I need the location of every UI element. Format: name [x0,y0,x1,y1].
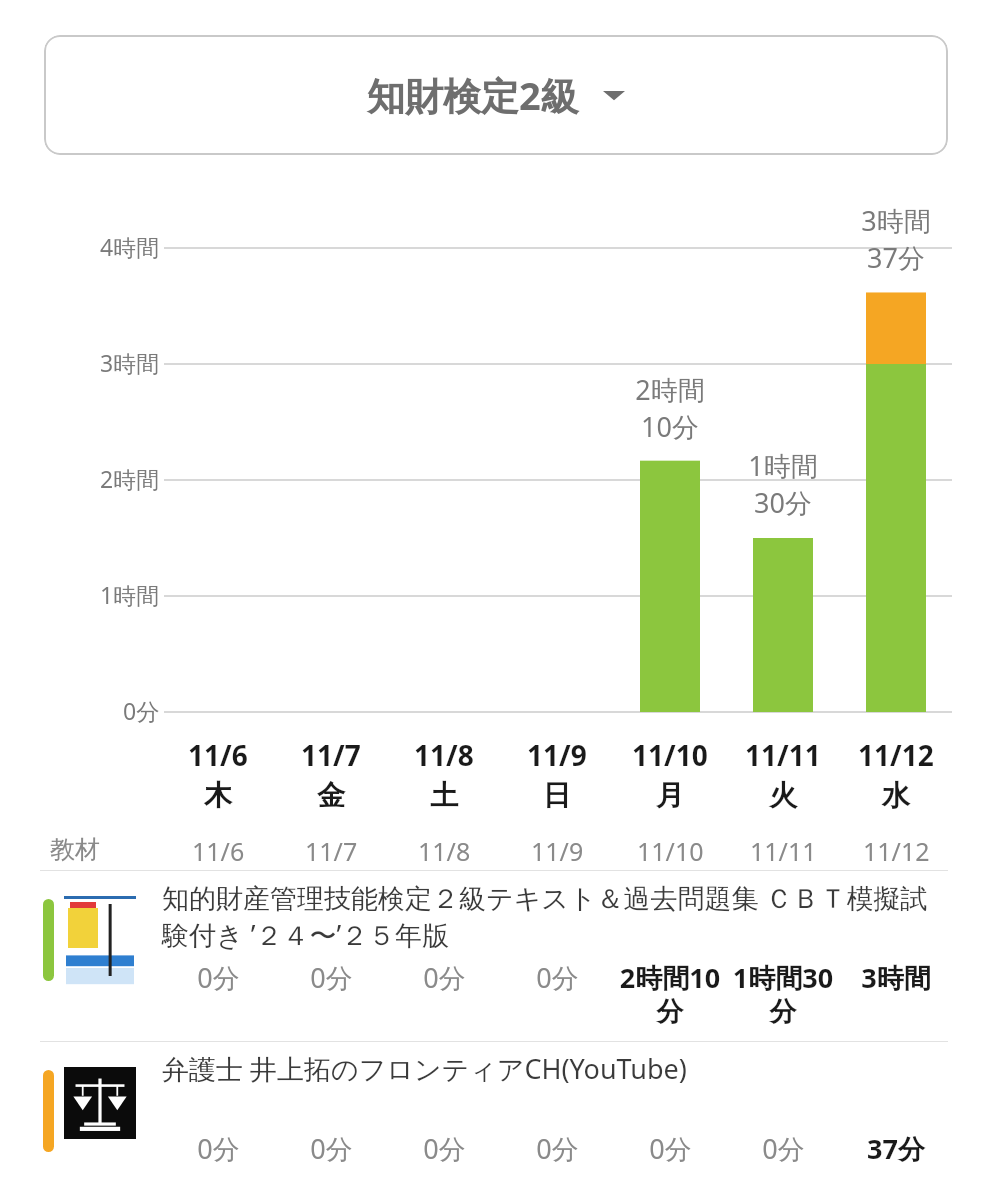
staticText: 0分 [536,959,579,996]
staticText: 月 [656,778,684,813]
staticText: 2時間10分 [614,959,726,1029]
staticText: 11/7 [301,736,361,774]
staticText: 0分 [762,1130,805,1167]
staticText: 11/8 [414,736,474,774]
staticText: 知財検定2級 [367,69,579,121]
staticText: 11/7 [305,834,358,868]
staticText: 0分 [423,959,466,996]
staticText: 4時間 [100,231,160,262]
staticText: 10分 [641,408,699,445]
button[interactable]: 弁護士 井上拓のフロンティアCH(YouTube) [0,1042,992,1200]
staticText: 水 [882,778,910,813]
staticText: 2時間 [100,463,160,494]
staticText: 1時間 [748,447,818,484]
staticText: 37分 [867,1130,925,1167]
staticText: 弁護士 井上拓のフロンティアCH(YouTube) [162,1050,687,1087]
staticText: 0分 [310,1130,353,1167]
staticText: 火 [769,778,797,813]
staticText: 11/11 [750,834,817,868]
staticText: 11/9 [527,736,587,774]
staticText: 0分 [197,1130,240,1167]
staticText: 2時間 [635,371,705,408]
staticText: 0分 [310,959,353,996]
button[interactable]: 知財検定2級 [44,35,948,155]
staticText: 3時間 [861,959,931,996]
staticText: 11/12 [858,736,934,774]
staticText: 0分 [197,959,240,996]
staticText: 金 [317,778,345,813]
staticText: 11/10 [632,736,708,774]
staticText: 0分 [536,1130,579,1167]
staticText: 11/6 [192,834,245,868]
staticText: 1時間 [100,579,160,610]
staticText: 11/9 [531,834,584,868]
staticText: 1時間30分 [727,959,839,1029]
staticText: 教材 [50,834,100,865]
button[interactable]: 知的財産管理技能検定２級テキスト＆過去問題集 ＣＢＴ模擬試験付き ’２４〜’２５… [0,871,992,1041]
staticText: 日 [543,778,571,813]
staticText: 11/8 [418,834,471,868]
staticText: 30分 [754,484,812,521]
staticText: 3時間 [100,347,160,378]
staticText: 11/10 [637,834,704,868]
staticText: 0分 [649,1130,692,1167]
staticText: 11/12 [863,834,930,868]
staticText: 11/11 [745,736,821,774]
staticText: 木 [204,778,232,813]
staticText: 37分 [867,239,925,276]
staticText: 0分 [423,1130,466,1167]
staticText: 0分 [123,695,160,726]
staticText: 土 [430,778,458,813]
staticText: 知的財産管理技能検定２級テキスト＆過去問題集 ＣＢＴ模擬試験付き ’２４〜’２５… [162,879,952,953]
staticText: 3時間 [861,202,931,239]
staticText: 11/6 [188,736,248,774]
